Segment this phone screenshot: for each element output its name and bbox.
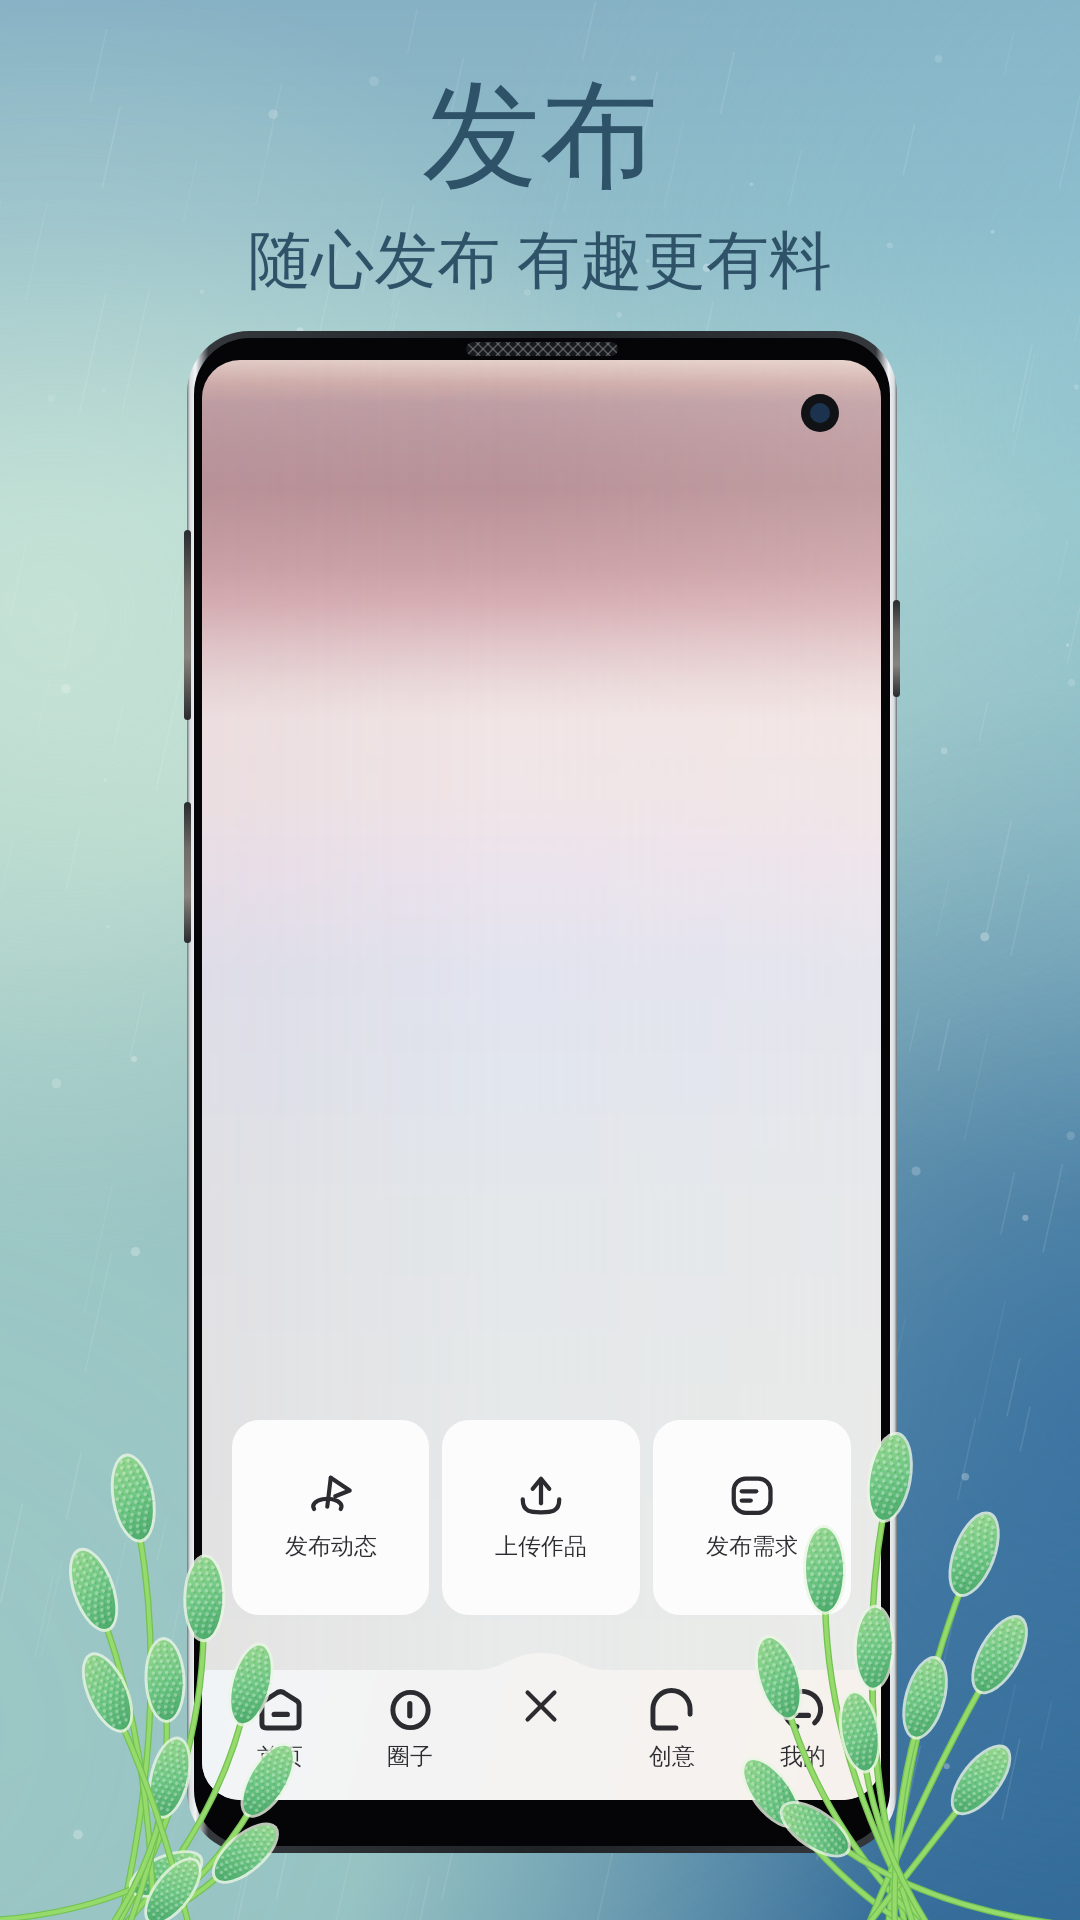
staticText: 发布需求: [706, 1532, 798, 1561]
staticText: 发布: [422, 62, 658, 211]
staticText: 发布动态: [285, 1532, 377, 1561]
button[interactable]: 上传作品: [442, 1420, 640, 1615]
staticText: 我的: [780, 1742, 826, 1771]
button[interactable]: 我的: [737, 1686, 868, 1800]
staticText: 随心发布 有趣更有料: [248, 215, 832, 301]
button[interactable]: 发布需求: [653, 1420, 851, 1615]
button[interactable]: 创意: [606, 1686, 737, 1800]
staticText: 创意: [649, 1742, 695, 1771]
staticText: 上传作品: [495, 1532, 587, 1561]
button[interactable]: 首页: [215, 1686, 345, 1800]
staticText: 首页: [257, 1742, 303, 1771]
button[interactable]: 圈子: [345, 1686, 475, 1800]
button[interactable]: Close: [513, 1678, 569, 1734]
staticText: 圈子: [387, 1742, 433, 1771]
button[interactable]: 发布动态: [232, 1420, 429, 1615]
